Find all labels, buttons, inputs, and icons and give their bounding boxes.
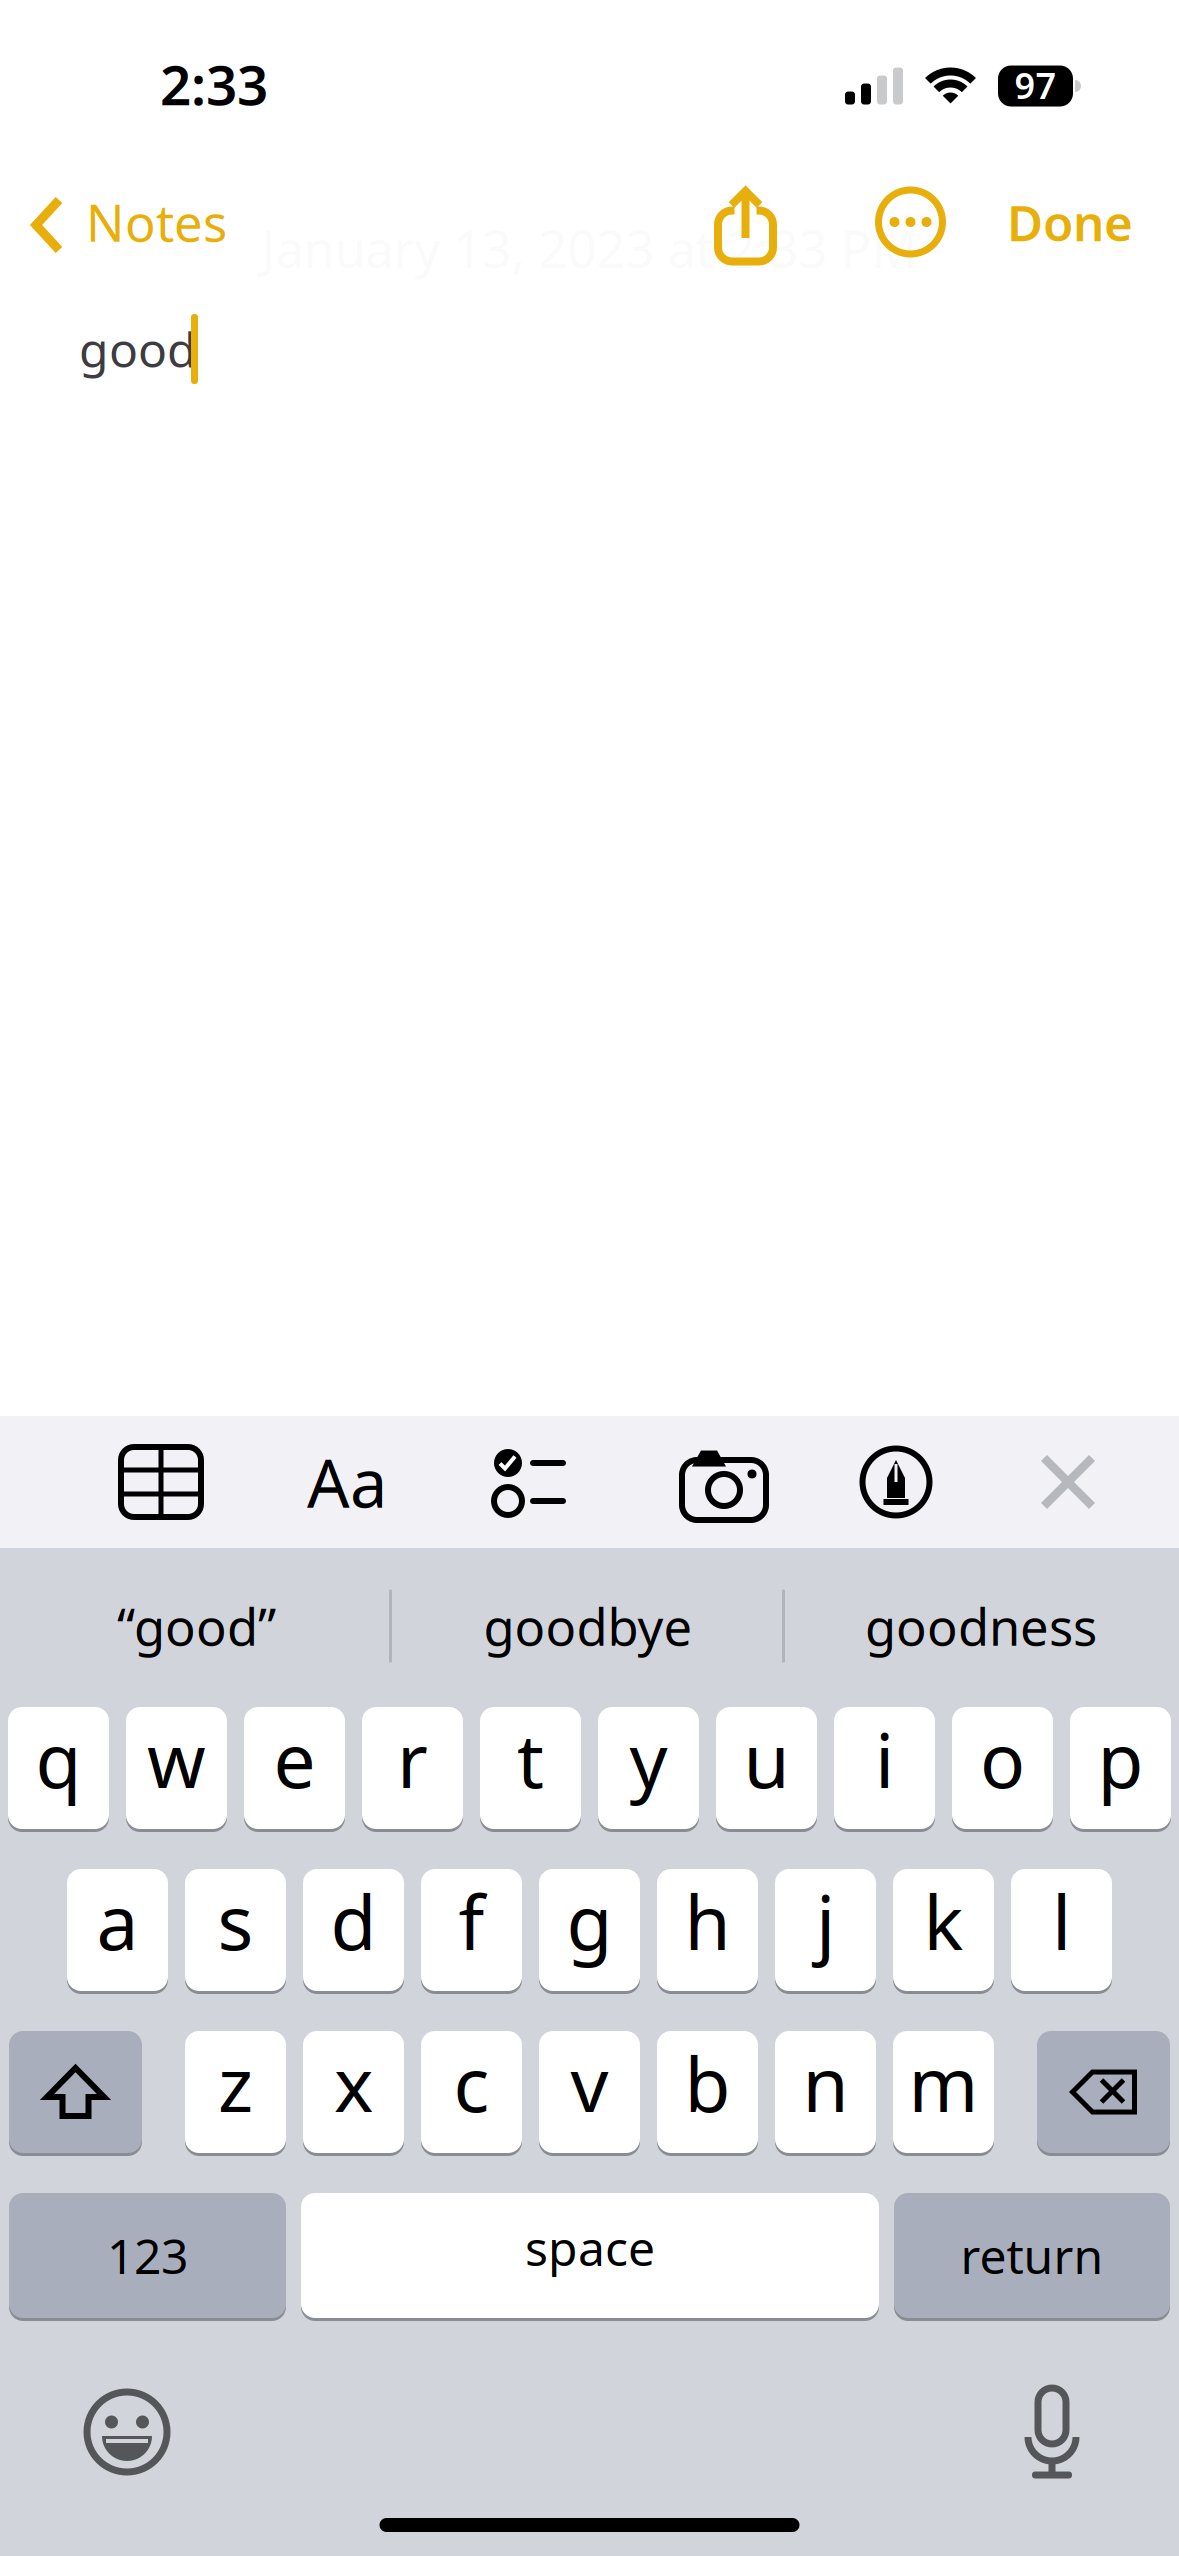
staticText: good bbox=[79, 317, 197, 381]
button[interactable]: b bbox=[657, 2028, 758, 2156]
staticText: h bbox=[684, 1871, 730, 1971]
button[interactable]: Markup bbox=[830, 1416, 962, 1548]
staticText: m bbox=[908, 2033, 978, 2133]
button[interactable]: k bbox=[893, 1866, 994, 1994]
button[interactable]: Done bbox=[961, 160, 1179, 284]
button[interactable]: i bbox=[834, 1704, 935, 1832]
button[interactable]: Table bbox=[70, 1416, 252, 1548]
button[interactable]: x bbox=[303, 2028, 404, 2156]
button[interactable]: a bbox=[67, 1866, 168, 1994]
button[interactable]: c bbox=[421, 2028, 522, 2156]
staticText: j bbox=[816, 1871, 835, 1971]
staticText: p bbox=[1097, 1709, 1143, 1809]
staticText: 2:33 bbox=[160, 48, 268, 120]
button[interactable]: Shift bbox=[9, 2028, 142, 2156]
staticText: space bbox=[525, 2216, 655, 2279]
button[interactable]: Share bbox=[631, 160, 860, 284]
staticText: y bbox=[629, 1709, 667, 1809]
staticText: a bbox=[96, 1871, 138, 1971]
button[interactable]: l bbox=[1011, 1866, 1112, 1994]
button[interactable]: j bbox=[775, 1866, 876, 1994]
staticText: e bbox=[273, 1709, 315, 1809]
staticText: Done bbox=[1007, 189, 1133, 255]
staticText: l bbox=[1052, 1871, 1071, 1971]
button[interactable]: y bbox=[598, 1704, 699, 1832]
button[interactable]: goodness bbox=[784, 1546, 1177, 1706]
button[interactable]: Format bbox=[252, 1416, 442, 1548]
staticText: 123 bbox=[107, 2224, 188, 2287]
button[interactable]: t bbox=[480, 1704, 581, 1832]
staticText: f bbox=[458, 1871, 484, 1971]
staticText: d bbox=[330, 1871, 376, 1971]
staticText: Aa bbox=[307, 1438, 387, 1526]
staticText: “good” bbox=[117, 1592, 276, 1660]
staticText: u bbox=[743, 1709, 789, 1809]
staticText: q bbox=[35, 1709, 81, 1809]
button[interactable]: e bbox=[244, 1704, 345, 1832]
button[interactable]: “good” bbox=[1, 1546, 391, 1706]
staticText: g bbox=[566, 1871, 612, 1971]
staticText: x bbox=[334, 2033, 373, 2133]
button[interactable]: z bbox=[185, 2028, 286, 2156]
staticText: t bbox=[517, 1709, 544, 1809]
staticText: k bbox=[923, 1871, 963, 1971]
staticText: n bbox=[802, 2033, 848, 2133]
button[interactable]: return bbox=[894, 2190, 1170, 2321]
button[interactable]: o bbox=[952, 1704, 1053, 1832]
button[interactable]: u bbox=[716, 1704, 817, 1832]
button[interactable]: Close keyboard bbox=[962, 1416, 1174, 1548]
button[interactable]: v bbox=[539, 2028, 640, 2156]
button[interactable]: d bbox=[303, 1866, 404, 1994]
staticText: goodness bbox=[865, 1592, 1097, 1660]
button[interactable]: h bbox=[657, 1866, 758, 1994]
staticText: s bbox=[217, 1871, 253, 1971]
button[interactable]: q bbox=[8, 1704, 109, 1832]
button[interactable]: Dictation bbox=[992, 2377, 1112, 2487]
button[interactable]: r bbox=[362, 1704, 463, 1832]
button[interactable]: Notes bbox=[0, 160, 245, 284]
staticText: r bbox=[397, 1709, 428, 1809]
button[interactable]: f bbox=[421, 1866, 522, 1994]
staticText: b bbox=[684, 2033, 730, 2133]
staticText: z bbox=[218, 2033, 253, 2133]
button[interactable]: More bbox=[860, 160, 961, 284]
button[interactable]: 123 bbox=[9, 2190, 286, 2321]
button[interactable]: Delete bbox=[1037, 2028, 1170, 2156]
staticText: goodbye bbox=[483, 1592, 692, 1660]
button[interactable]: s bbox=[185, 1866, 286, 1994]
button[interactable]: Emoji bbox=[67, 2377, 187, 2487]
button[interactable]: n bbox=[775, 2028, 876, 2156]
staticText: w bbox=[147, 1709, 206, 1809]
button[interactable]: goodbye bbox=[391, 1546, 784, 1706]
staticText: v bbox=[570, 2033, 608, 2133]
staticText: Notes bbox=[86, 188, 227, 256]
button[interactable]: Camera bbox=[618, 1416, 830, 1548]
staticText: i bbox=[875, 1709, 894, 1809]
button[interactable]: Checklist bbox=[442, 1416, 618, 1548]
button[interactable]: g bbox=[539, 1866, 640, 1994]
button[interactable]: space bbox=[301, 2190, 879, 2321]
staticText: January 13, 2023 at 2:33 PM bbox=[261, 214, 917, 282]
button[interactable]: w bbox=[126, 1704, 227, 1832]
staticText: o bbox=[980, 1709, 1025, 1809]
staticText: 97 bbox=[1014, 61, 1056, 109]
staticText: c bbox=[453, 2033, 489, 2133]
button[interactable]: p bbox=[1070, 1704, 1171, 1832]
button[interactable]: m bbox=[893, 2028, 994, 2156]
staticText: return bbox=[960, 2224, 1103, 2287]
